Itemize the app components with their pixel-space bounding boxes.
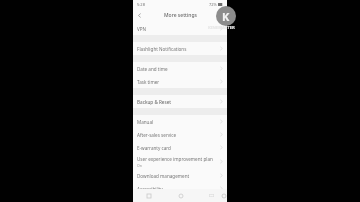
button[interactable]: Download management <box>133 169 227 182</box>
staticText: VPN <box>137 26 147 32</box>
staticText: Manual <box>137 119 154 125</box>
staticText: Task timer <box>137 79 160 85</box>
staticText: 72% <box>209 2 217 7</box>
button[interactable]: Date and time <box>133 62 227 75</box>
button[interactable]: Accessibility <box>133 182 227 195</box>
staticText: K <box>222 9 230 24</box>
button[interactable]: Back <box>196 189 227 202</box>
button[interactable]: E-warranty card <box>133 141 227 154</box>
button[interactable]: Task timer <box>133 75 227 88</box>
button[interactable]: User experience improvement plan <box>133 154 227 169</box>
button[interactable]: Home <box>165 189 196 202</box>
staticText: On <box>137 163 142 168</box>
staticText: User experience improvement plan <box>137 156 213 162</box>
staticText: Download management <box>137 173 190 179</box>
staticText: Flashlight Notifications <box>137 46 187 52</box>
staticText: Date and time <box>137 66 168 72</box>
button[interactable]: After-sales service <box>133 128 227 141</box>
staticText: E-warranty card <box>137 145 171 151</box>
button[interactable]: Recents <box>133 189 165 202</box>
staticText: KINEMASTER <box>208 25 235 31</box>
staticText: More settings <box>164 12 197 19</box>
staticText: Backup & Reset <box>137 99 172 105</box>
button[interactable]: Back <box>133 9 146 22</box>
button[interactable]: Manual <box>133 115 227 128</box>
staticText: After-sales service <box>137 132 177 138</box>
button[interactable]: Backup & Reset <box>133 95 227 108</box>
staticText: Accessibility <box>137 186 163 192</box>
button[interactable]: VPN <box>133 22 227 35</box>
staticText: 5:28 <box>137 2 145 7</box>
button[interactable]: Flashlight Notifications <box>133 42 227 55</box>
